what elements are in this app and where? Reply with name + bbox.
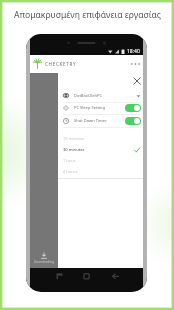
staticText: DotBoxOlehPC (74, 93, 102, 99)
staticText: Απομακρυσμένη επιφάνεια εργασίας (14, 9, 161, 21)
staticText: 1 hour (63, 158, 76, 164)
button[interactable]: 15 minutes (58, 133, 143, 144)
button[interactable]: Shut Down Timer (58, 114, 143, 127)
button[interactable]: 30 minutes (58, 144, 143, 155)
button[interactable]: DotBoxOlehPC (58, 89, 143, 102)
staticText: 4 hours (63, 169, 78, 175)
staticText: 15 minutes (63, 136, 85, 142)
staticText: Shut Down Timer (74, 118, 107, 124)
staticText: Downloading (34, 260, 54, 264)
button[interactable]: Close (132, 76, 142, 86)
staticText: CHECKETRY (45, 61, 77, 67)
staticText: 30 minutes (63, 147, 85, 153)
button[interactable]: 1 hour (58, 155, 143, 166)
staticText: PC Sleep Setting (74, 105, 105, 111)
staticText: 18:40 (127, 48, 140, 55)
button[interactable]: PC Sleep Setting (58, 101, 143, 114)
button[interactable]: More options (128, 58, 140, 70)
button[interactable]: 4 hours (58, 166, 143, 177)
